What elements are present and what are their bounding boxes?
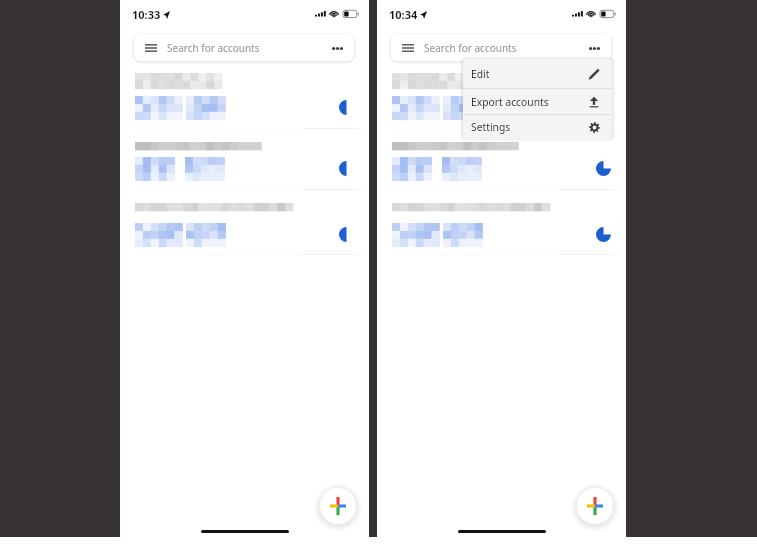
button[interactable] <box>120 129 369 190</box>
button[interactable]: Search for accounts <box>134 34 354 61</box>
button[interactable] <box>120 63 369 129</box>
staticText: 10:33 <box>132 7 161 22</box>
button[interactable]: Settings <box>463 115 612 139</box>
button[interactable]: More options <box>326 37 348 59</box>
button[interactable] <box>377 129 626 190</box>
staticText: Search for accounts <box>424 41 517 55</box>
button[interactable]: Add account <box>577 488 613 524</box>
button[interactable] <box>377 190 626 255</box>
button[interactable] <box>120 190 369 255</box>
button[interactable]: Add account <box>320 488 356 524</box>
staticText: 10:34 <box>389 7 418 22</box>
staticText: Export accounts <box>471 95 549 109</box>
button[interactable]: Export accounts <box>463 89 612 114</box>
button[interactable]: Edit <box>463 59 612 88</box>
staticText: Settings <box>471 120 511 134</box>
staticText: Edit <box>471 67 490 81</box>
button[interactable]: More options <box>583 37 605 59</box>
button[interactable] <box>377 63 626 129</box>
button[interactable]: Search for accounts <box>391 34 611 61</box>
staticText: Search for accounts <box>167 41 260 55</box>
